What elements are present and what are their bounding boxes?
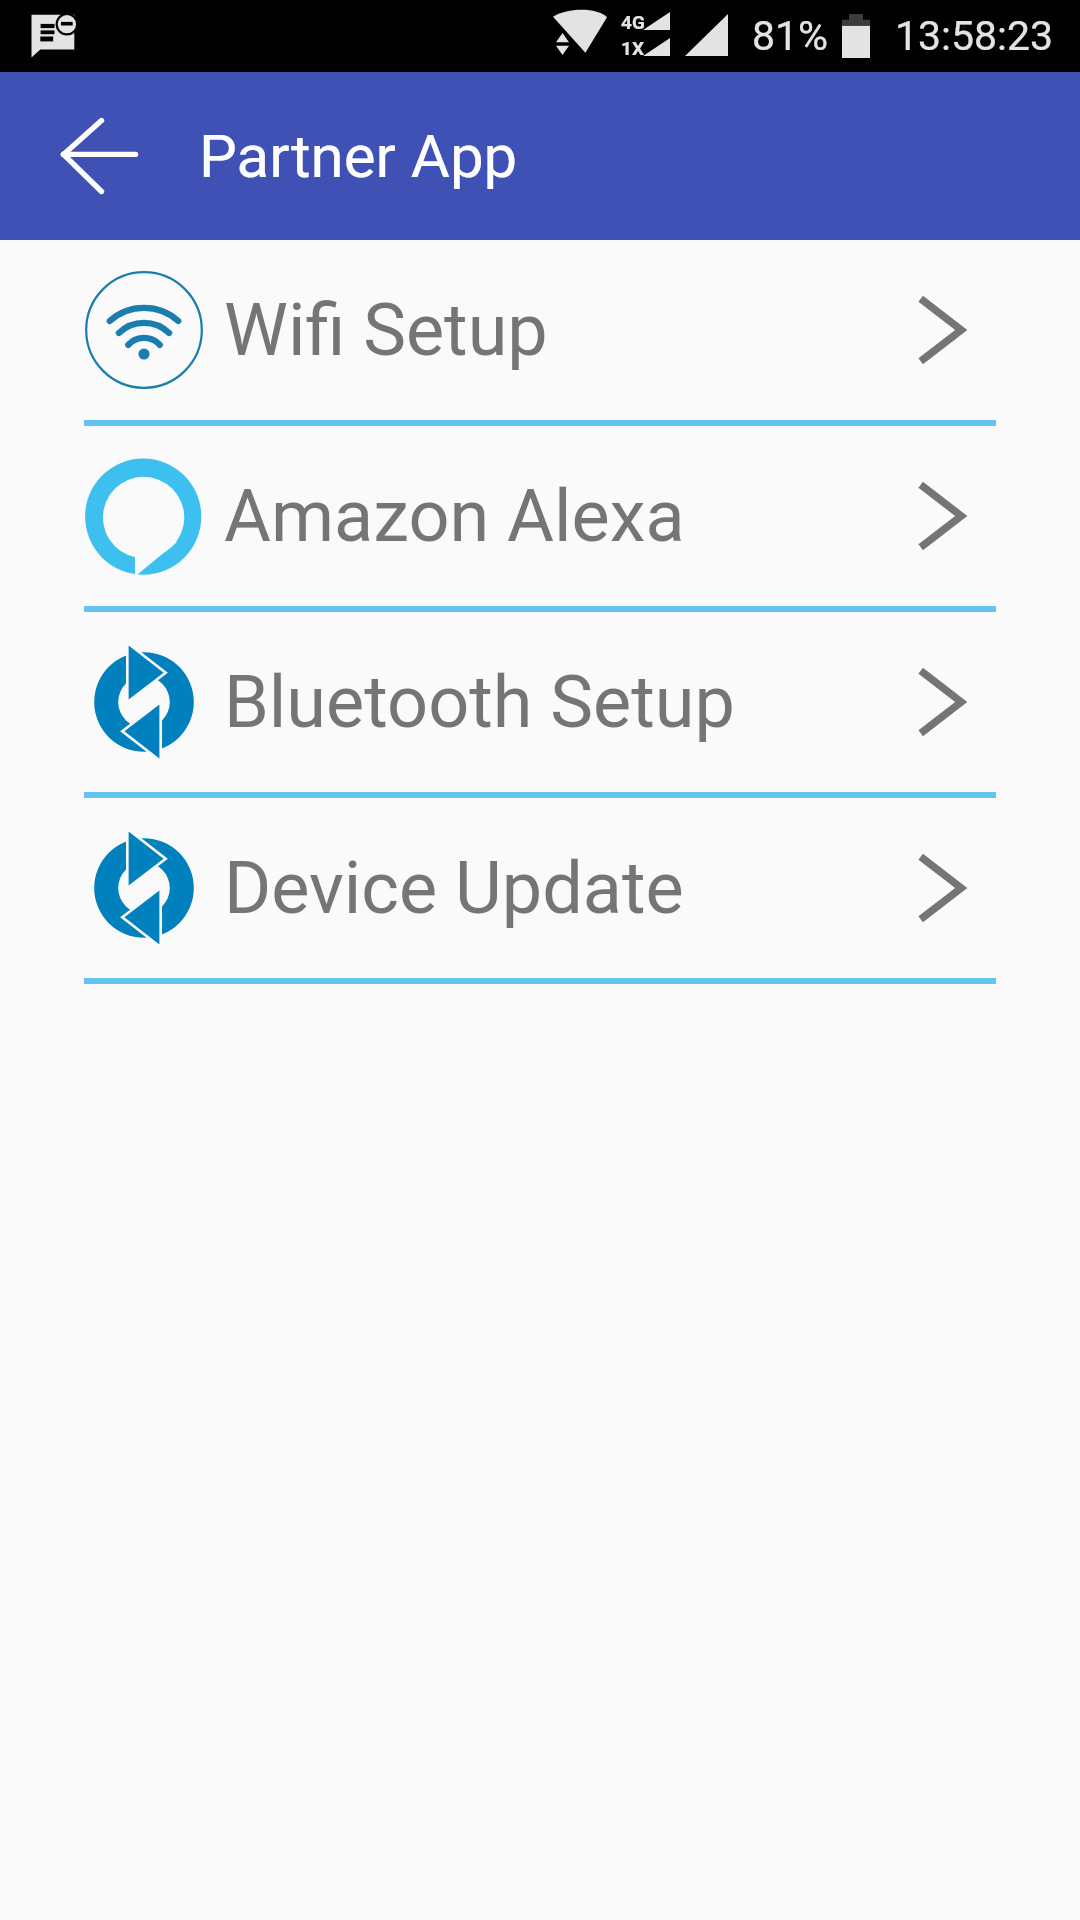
- staticText: Bluetooth Setup: [224, 660, 735, 744]
- staticText: 81%: [752, 12, 829, 60]
- button[interactable]: Amazon Alexa: [0, 426, 1080, 606]
- staticText: 4G: [621, 11, 645, 33]
- button[interactable]: Bluetooth Setup: [0, 612, 1080, 792]
- button[interactable]: Wifi Setup: [0, 240, 1080, 420]
- staticText: 13:58:23: [895, 12, 1054, 60]
- staticText: Device Update: [224, 846, 684, 930]
- staticText: Amazon Alexa: [224, 474, 685, 558]
- staticText: Wifi Setup: [224, 288, 548, 372]
- staticText: 1X: [621, 37, 644, 59]
- staticText: Partner App: [199, 121, 518, 191]
- button[interactable]: Device Update: [0, 798, 1080, 978]
- button[interactable]: Back: [16, 86, 156, 226]
